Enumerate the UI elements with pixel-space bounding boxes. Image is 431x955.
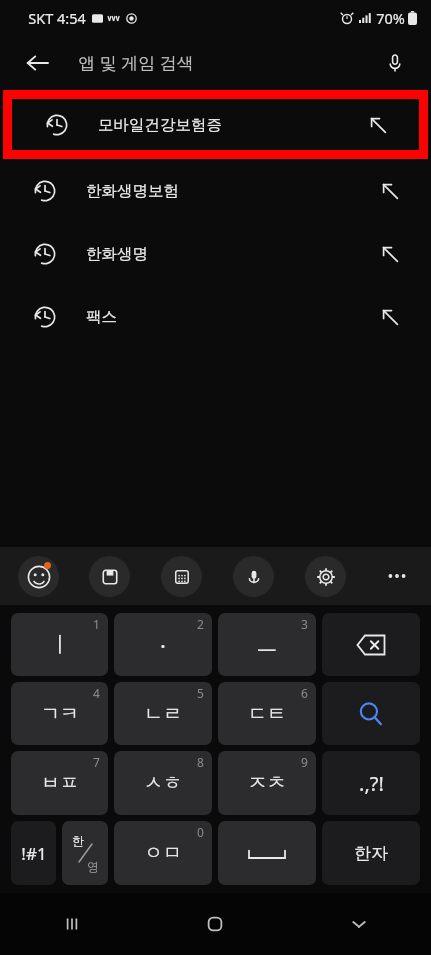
button[interactable]: Keyboard modes [161,556,202,597]
button[interactable]: · [114,613,212,676]
button[interactable]: 한화생명보험 [0,159,431,222]
staticText: ㅂㅍ [41,771,79,795]
staticText: · [160,630,166,660]
button[interactable]: .,?! [322,751,420,815]
staticText: ㅅㅎ [144,771,182,795]
staticText: 앱 및 게임 검색 [78,51,194,74]
button[interactable]: Settings [305,556,346,597]
staticText: ㄷㅌ [248,702,286,726]
staticText: ㅈㅊ [248,771,286,795]
button[interactable]: Voice search [373,41,417,85]
staticText: 2 [197,616,204,632]
button[interactable]: Home [143,893,287,955]
staticText: 한화생명보험 [86,181,179,201]
staticText: 7 [93,754,100,770]
staticText: 6 [301,685,308,701]
staticText: 9 [301,754,308,770]
button[interactable]: search [322,682,420,745]
staticText: !#1 [21,842,47,865]
button[interactable]: hanyeong [62,821,108,885]
button[interactable]: ㅇㅁ [114,821,212,885]
button[interactable]: 한자 [322,821,420,885]
staticText: 한화생명 [86,244,148,264]
staticText: 모바일건강보험증 [98,115,222,135]
staticText: 영 [87,859,99,874]
button[interactable]: ㅂㅍ [11,751,108,815]
button[interactable]: back [322,613,420,676]
staticText: SKT 4:54 [28,8,86,28]
staticText: 1 [93,616,100,632]
staticText: .,?! [359,770,384,797]
staticText: ㅇㅁ [144,841,182,865]
staticText: 3 [301,616,308,632]
button[interactable]: Voice input [233,556,274,597]
staticText: 4 [93,685,100,701]
button[interactable]: Hide keyboard [287,893,431,955]
button[interactable]: ㄷㅌ [218,682,316,745]
staticText: 팩스 [86,307,117,327]
button[interactable]: ㅣ [11,613,108,676]
button[interactable]: ㄴㄹ [114,682,212,745]
button[interactable]: Clipboard [89,556,130,597]
button[interactable]: ㅅㅎ [114,751,212,815]
button[interactable]: ㄱㅋ [11,682,108,745]
staticText: 0 [197,824,204,840]
button[interactable]: space [218,821,316,885]
staticText: 70% [376,8,405,28]
staticText: 8 [197,754,204,770]
button[interactable]: ㅈㅊ [218,751,316,815]
staticText: ㅣ [49,631,71,659]
button[interactable]: ㅡ [218,613,316,676]
staticText: 5 [197,685,204,701]
staticText: ㅡ [256,631,278,659]
button[interactable]: !#1 [11,821,56,885]
button[interactable]: Recents [0,893,143,955]
button[interactable]: Back [14,40,60,86]
button[interactable]: 한화생명 [0,222,431,285]
staticText: 한자 [354,843,388,864]
staticText: 한 [72,833,84,848]
staticText: ㄴㄹ [144,702,182,726]
staticText: ㄱㅋ [41,702,79,726]
button[interactable]: Emoji [18,556,59,597]
button[interactable]: 모바일건강보험증 [12,99,419,150]
button[interactable]: More options [377,556,417,596]
button[interactable]: 팩스 [0,285,431,348]
